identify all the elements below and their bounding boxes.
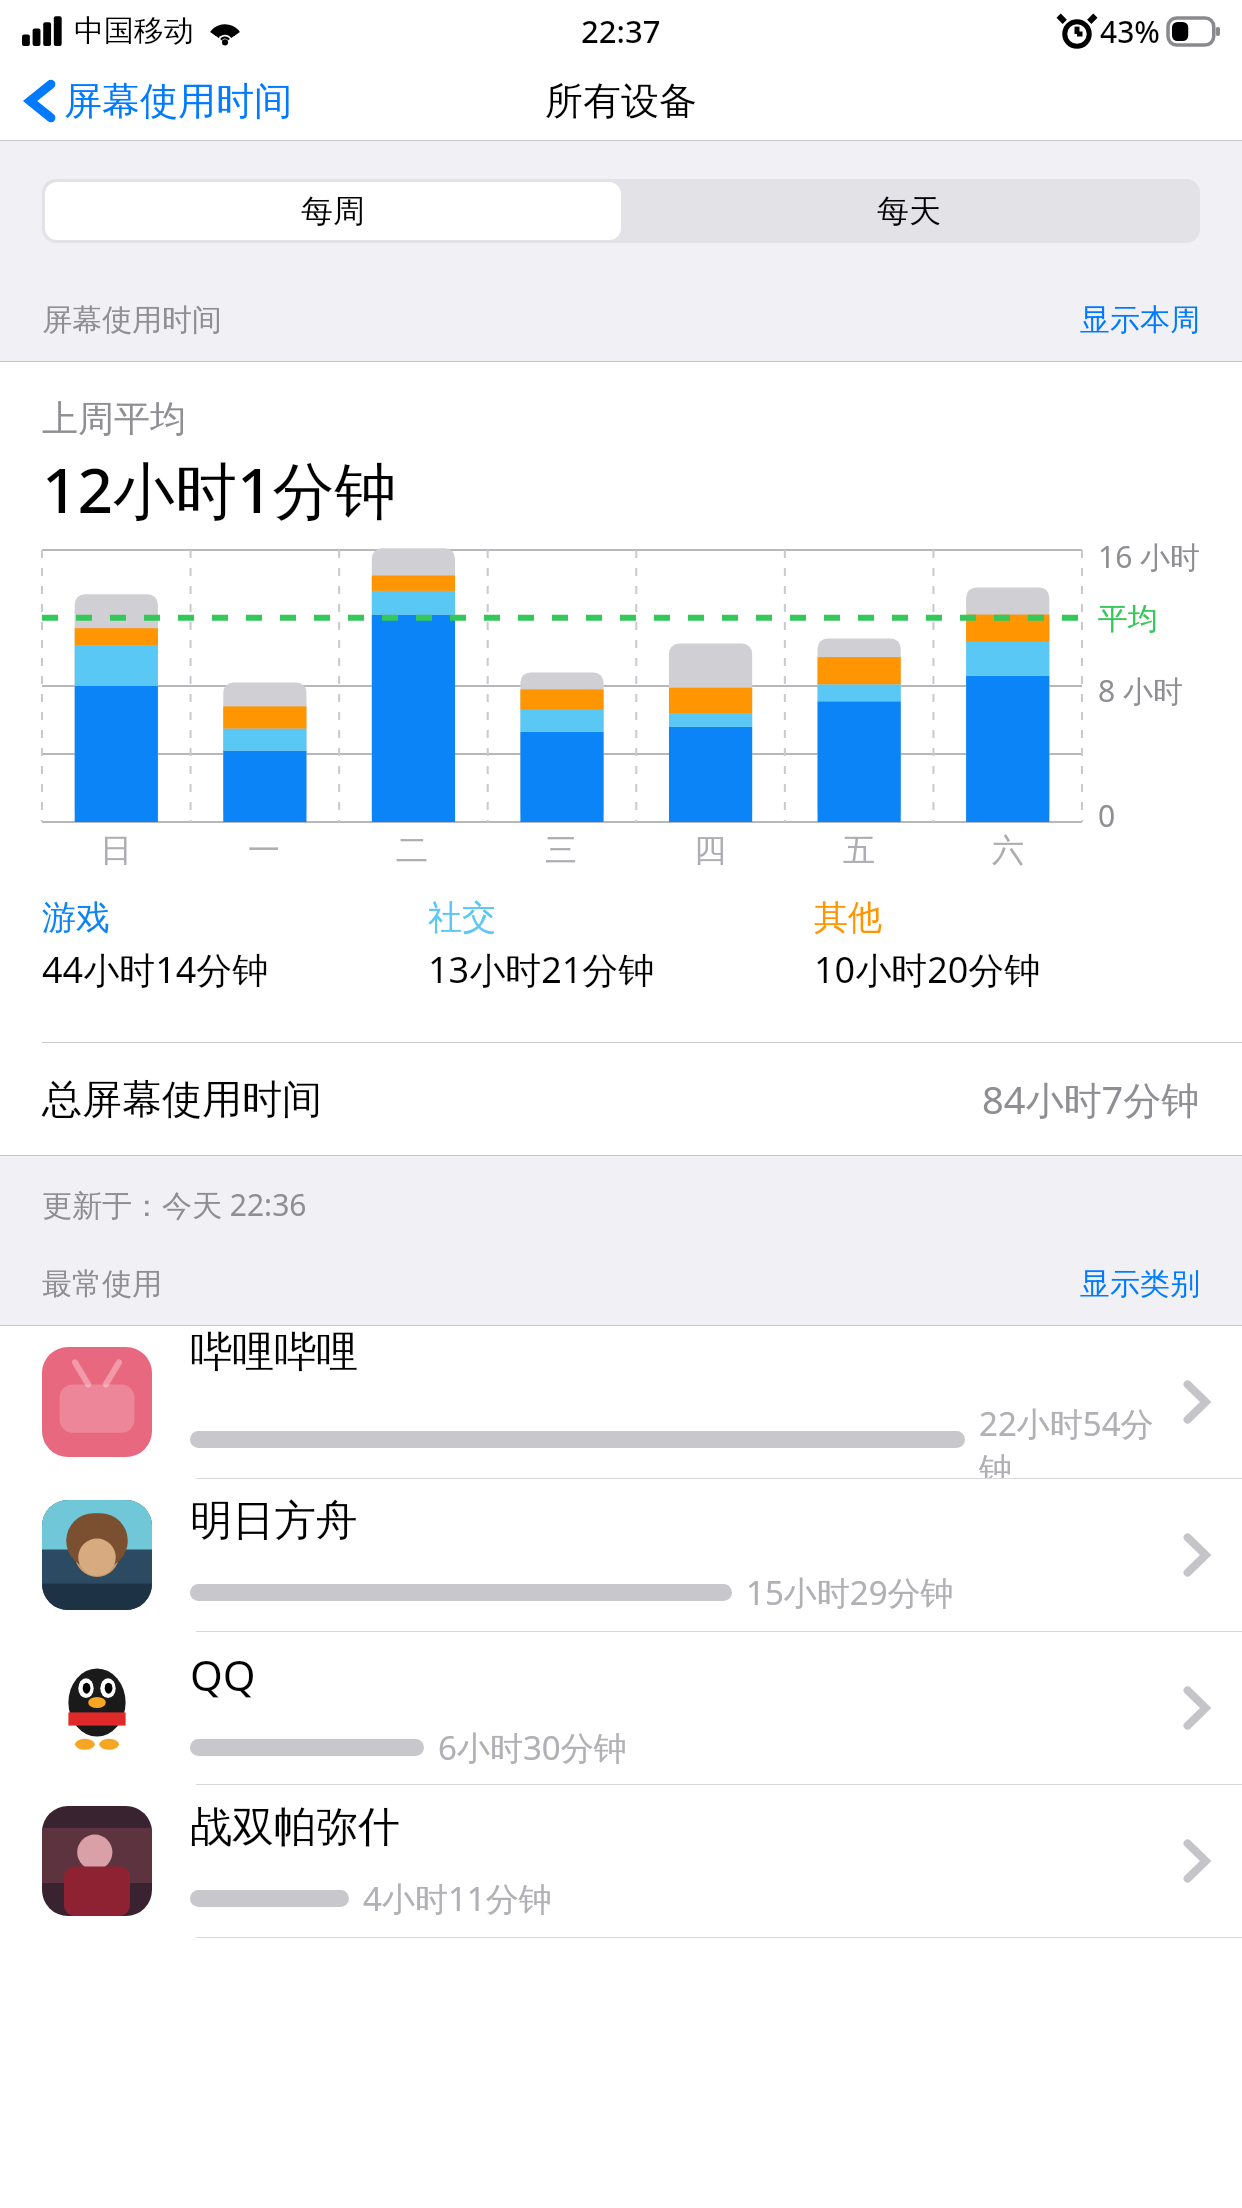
staticText: 哔哩哔哩: [190, 1326, 358, 1379]
staticText: 84小时7分钟: [982, 1073, 1200, 1125]
staticText: 12小时1分钟: [42, 447, 397, 532]
staticText: 屏幕使用时间: [64, 77, 292, 125]
staticText: 22:37: [581, 10, 661, 52]
staticText: 44小时14分钟: [42, 945, 269, 994]
button[interactable]: 战双帕弥什: [0, 1785, 1242, 1937]
staticText: 22小时54分钟: [979, 1401, 1184, 1478]
staticText: 四: [694, 830, 726, 870]
staticText: 4小时11分钟: [363, 1876, 552, 1921]
staticText: 8 小时: [1098, 670, 1183, 711]
button[interactable]: 每天: [621, 182, 1197, 240]
staticText: 总屏幕使用时间: [42, 1074, 322, 1124]
staticText: 每周: [301, 191, 365, 231]
staticText: 其他: [814, 896, 882, 939]
staticText: 战双帕弥什: [190, 1801, 400, 1854]
staticText: 10小时20分钟: [814, 945, 1041, 994]
button[interactable]: 社交: [428, 896, 814, 994]
button[interactable]: 显示本周: [1080, 301, 1200, 339]
button[interactable]: 明日方舟: [0, 1479, 1242, 1631]
button[interactable]: QQ: [0, 1632, 1242, 1784]
staticText: 所有设备: [545, 77, 697, 125]
staticText: 三: [545, 830, 577, 870]
staticText: QQ: [190, 1646, 256, 1703]
button[interactable]: 游戏: [42, 896, 428, 994]
staticText: 0: [1098, 795, 1116, 836]
button[interactable]: 屏幕使用时间: [0, 69, 308, 133]
button[interactable]: 总屏幕使用时间: [0, 1043, 1242, 1155]
staticText: 每天: [877, 191, 941, 231]
button[interactable]: 哔哩哔哩: [0, 1326, 1242, 1478]
staticText: 六: [992, 830, 1024, 870]
staticText: 平均: [1098, 600, 1158, 638]
staticText: 更新于：今天 22:36: [42, 1184, 307, 1225]
staticText: 游戏: [42, 896, 110, 939]
staticText: 6小时30分钟: [438, 1725, 627, 1770]
button[interactable]: 显示类别: [1080, 1265, 1200, 1303]
staticText: 43%: [1100, 11, 1160, 52]
staticText: 中国移动: [74, 12, 194, 50]
staticText: 上周平均: [42, 396, 186, 441]
button[interactable]: 每周: [45, 182, 621, 240]
staticText: 15小时29分钟: [746, 1570, 954, 1615]
staticText: 屏幕使用时间: [42, 301, 222, 339]
button[interactable]: 其他: [814, 896, 1200, 994]
staticText: 五: [843, 830, 875, 870]
staticText: 一: [248, 830, 280, 870]
staticText: 最常使用: [42, 1265, 162, 1303]
staticText: 日: [100, 830, 132, 870]
staticText: 二: [396, 830, 428, 870]
staticText: 明日方舟: [190, 1495, 358, 1548]
staticText: 16 小时: [1098, 536, 1201, 577]
staticText: 社交: [428, 896, 496, 939]
staticText: 显示本周: [1080, 301, 1200, 339]
staticText: 显示类别: [1080, 1265, 1200, 1303]
staticText: 13小时21分钟: [428, 945, 655, 994]
